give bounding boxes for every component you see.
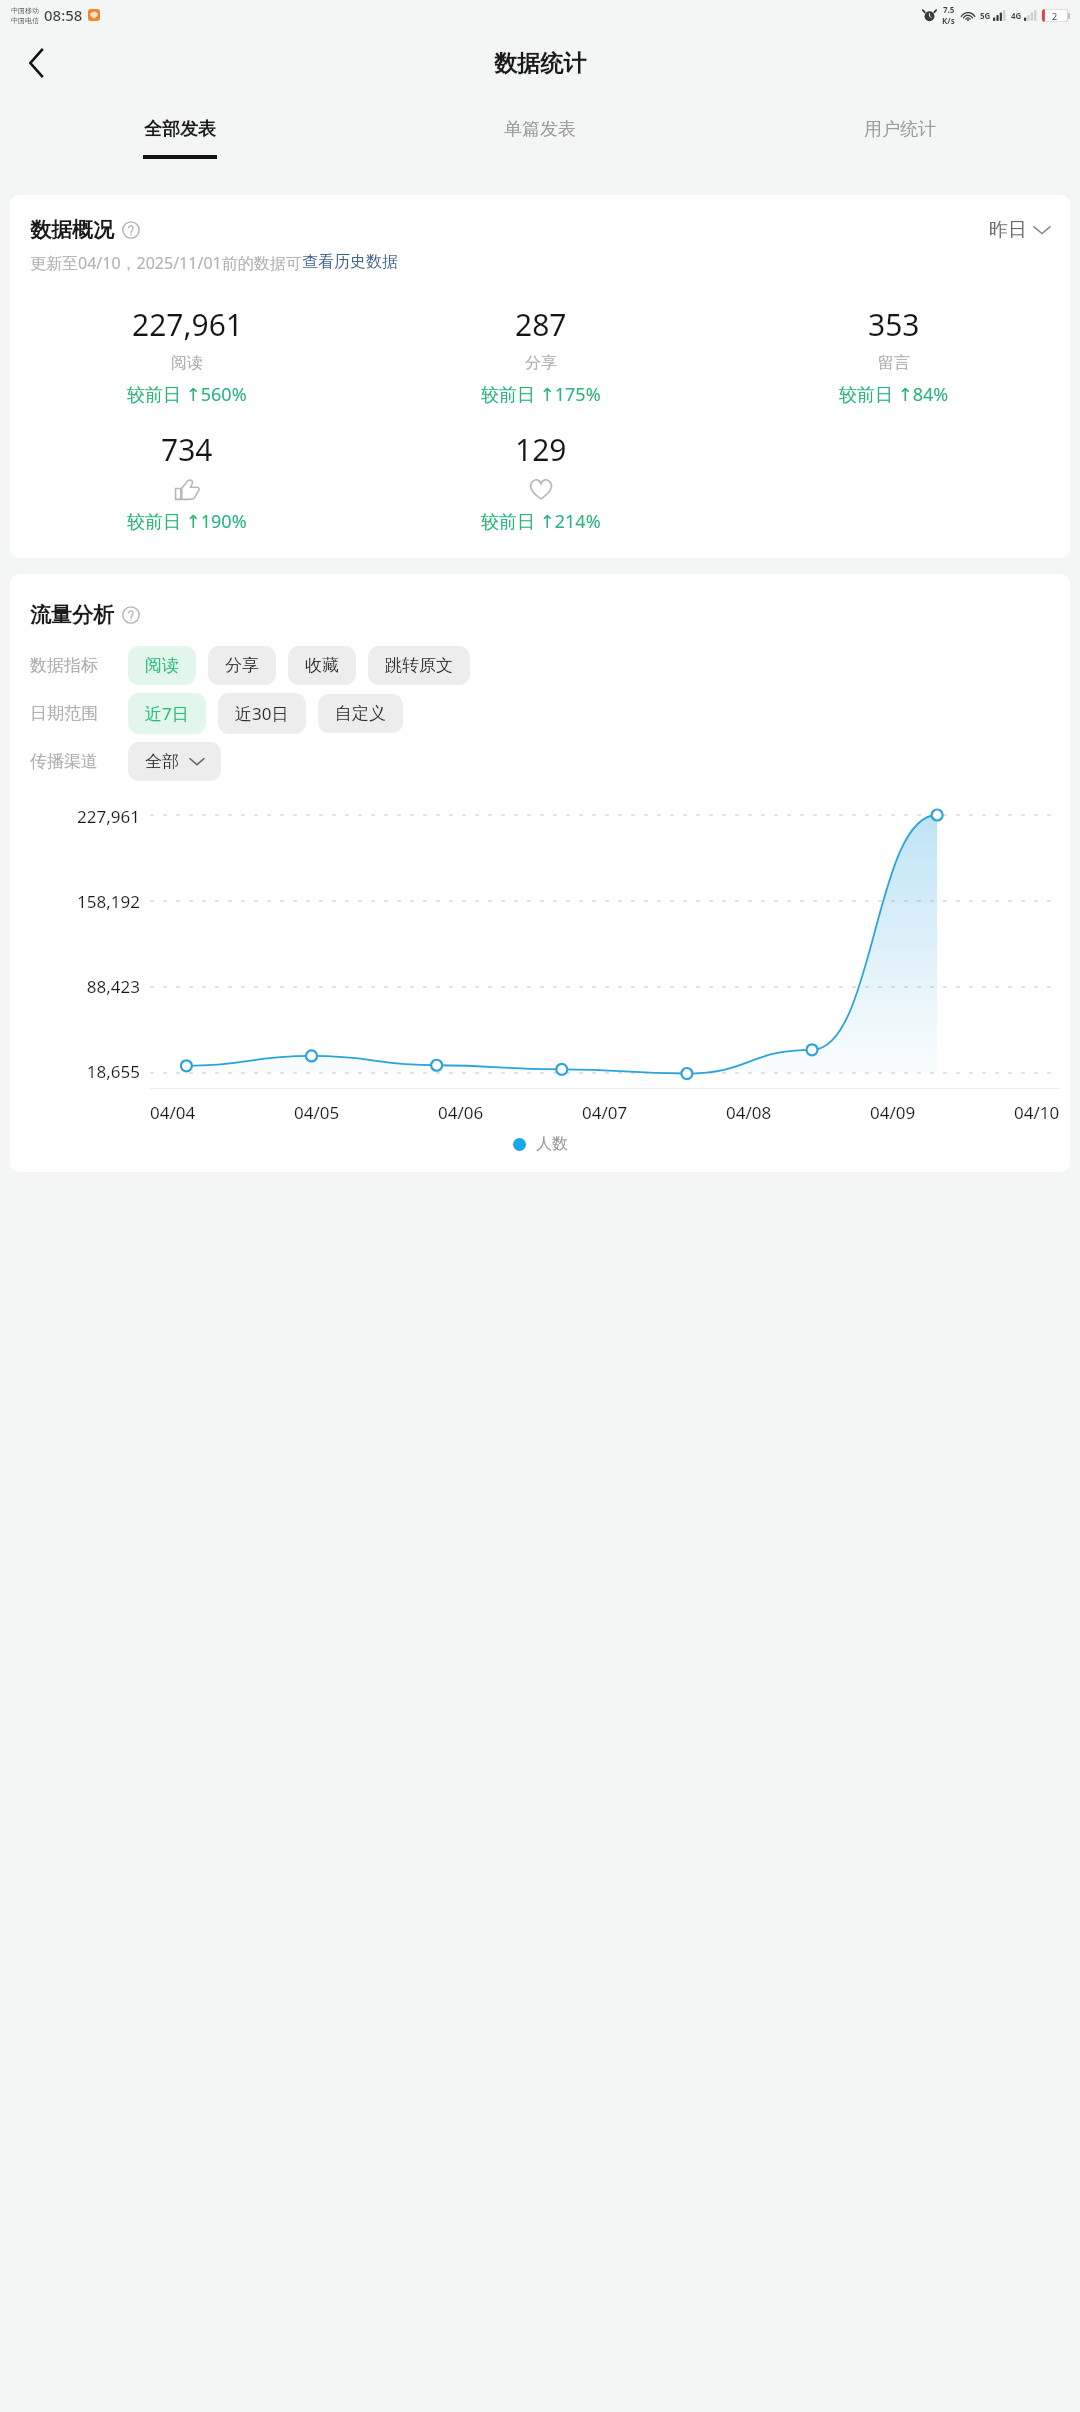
staticText: 日期范围 <box>30 703 128 724</box>
staticText: 4G <box>1011 10 1022 21</box>
staticText: 留言 <box>878 353 910 373</box>
button[interactable]: 查看历史数据 <box>302 252 398 272</box>
button[interactable]: 自定义 <box>318 694 403 733</box>
staticText: 88,423 <box>30 975 140 998</box>
staticText: 7.5 <box>943 4 955 15</box>
staticText: 全部发表 <box>144 118 216 141</box>
staticText: 更新至04/10，2025/11/01前的数据可 <box>30 252 302 274</box>
button[interactable]: 全部发表 <box>0 96 360 181</box>
staticText: 较前日 ↑560% <box>127 382 247 407</box>
staticText: 全部 <box>145 751 179 772</box>
button[interactable]: 129 <box>364 429 717 534</box>
staticText: 数据指标 <box>30 655 128 676</box>
button[interactable]: Back <box>12 39 60 87</box>
button[interactable]: 收藏 <box>288 646 356 685</box>
staticText: 流量分析 <box>30 602 114 628</box>
staticText: 中国移动 <box>11 6 39 15</box>
staticText: 04/09 <box>870 1101 916 1124</box>
staticText: 中国电信 <box>11 16 39 25</box>
button[interactable]: 353 <box>717 304 1070 407</box>
staticText: 5G <box>980 10 991 21</box>
button[interactable]: 分享 <box>208 646 276 685</box>
staticText: 较前日 ↑175% <box>481 382 601 407</box>
staticText: 近7日 <box>145 702 189 725</box>
button[interactable]: 阅读 <box>128 646 196 685</box>
staticText: 数据概况 <box>30 217 114 243</box>
staticText: 734 <box>161 429 213 470</box>
staticText: 较前日 ↑190% <box>127 509 247 534</box>
staticText: 数据统计 <box>494 49 586 78</box>
staticText: 08:58 <box>44 5 83 25</box>
staticText: K/s <box>942 15 955 26</box>
staticText: 287 <box>515 304 567 345</box>
staticText: 04/05 <box>294 1101 340 1124</box>
staticText: 跳转原文 <box>385 655 453 676</box>
staticText: 昨日 <box>989 218 1027 242</box>
button[interactable]: 跳转原文 <box>368 646 470 685</box>
button[interactable]: Help <box>121 220 141 240</box>
staticText: 129 <box>515 429 567 470</box>
staticText: 2 <box>1052 10 1058 22</box>
button[interactable]: 近30日 <box>218 693 306 734</box>
button[interactable]: 287 <box>364 304 717 407</box>
staticText: 04/07 <box>582 1101 628 1124</box>
staticText: 阅读 <box>145 655 179 676</box>
staticText: 较前日 ↑214% <box>481 509 601 534</box>
staticText: 自定义 <box>335 703 386 724</box>
staticText: 阅读 <box>171 353 203 373</box>
button[interactable]: 昨日 <box>989 218 1050 242</box>
button[interactable]: 近7日 <box>128 693 206 734</box>
button[interactable]: 单篇发表 <box>360 96 720 181</box>
button[interactable]: 用户统计 <box>720 96 1080 181</box>
staticText: 04/10 <box>1014 1101 1060 1124</box>
staticText: 用户统计 <box>864 118 936 141</box>
staticText: 04/06 <box>438 1101 484 1124</box>
staticText: 353 <box>868 304 920 345</box>
staticText: 158,192 <box>30 890 140 913</box>
staticText: 227,961 <box>132 304 243 345</box>
button[interactable]: 全部 <box>128 742 221 781</box>
staticText: 18,655 <box>30 1060 140 1083</box>
staticText: 单篇发表 <box>504 118 576 141</box>
staticText: 较前日 ↑84% <box>839 382 949 407</box>
staticText: 04/04 <box>150 1101 196 1124</box>
staticText: 人数 <box>536 1134 568 1154</box>
staticText: 近30日 <box>235 702 289 725</box>
button[interactable]: Help <box>121 605 141 625</box>
staticText: 分享 <box>525 353 557 373</box>
button[interactable]: 227,961 <box>10 304 364 407</box>
staticText: 收藏 <box>305 655 339 676</box>
staticText: 04/08 <box>726 1101 772 1124</box>
staticText: 227,961 <box>30 805 140 828</box>
button[interactable]: 734 <box>10 429 364 534</box>
staticText: 分享 <box>225 655 259 676</box>
staticText: 传播渠道 <box>30 751 128 772</box>
